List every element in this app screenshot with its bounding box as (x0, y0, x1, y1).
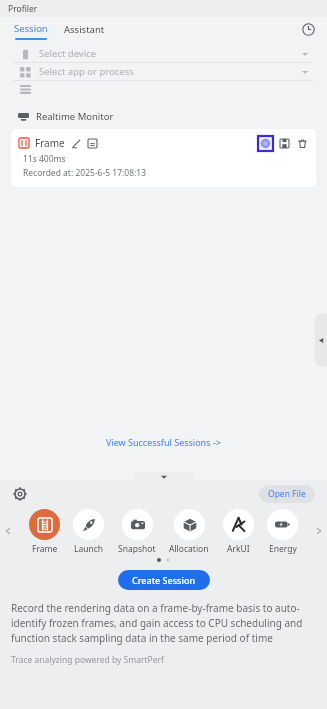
button[interactable]: Settings (12, 486, 28, 502)
button[interactable]: Assistant (62, 23, 107, 40)
staticText: Launch (74, 543, 104, 555)
button[interactable]: Rename (70, 137, 83, 150)
staticText: Realtime Monitor (36, 110, 114, 123)
button[interactable]: Create Session (118, 570, 210, 590)
staticText: View Successful Sessions -> (106, 436, 221, 448)
button[interactable]: Energy (266, 509, 299, 555)
button[interactable]: Open File (259, 485, 315, 503)
button[interactable]: Collapse panel (134, 472, 194, 481)
staticText: Trace analyzing powered by SmartPerf (11, 654, 164, 666)
staticText: 11s 400ms (23, 153, 66, 165)
button[interactable]: Select device (13, 45, 314, 62)
button[interactable]: Next (311, 509, 327, 553)
button[interactable]: ArkUI (222, 509, 255, 555)
staticText: Assistant (64, 23, 105, 36)
button[interactable] (13, 81, 314, 98)
button[interactable]: Launch (72, 509, 105, 555)
button[interactable]: Session (12, 22, 50, 40)
button[interactable]: Notes (86, 137, 99, 150)
staticText: Session (14, 22, 48, 35)
staticText: ArkUI (227, 543, 250, 555)
button[interactable]: View Successful Sessions -> (102, 432, 225, 452)
button[interactable]: Previous (0, 509, 16, 553)
staticText: Select device (39, 47, 97, 60)
button[interactable]: Frame (28, 509, 61, 555)
button[interactable]: History (299, 20, 317, 38)
staticText: Allocation (169, 543, 209, 555)
button[interactable]: Frame (11, 129, 316, 187)
button[interactable]: Expand panel (315, 314, 327, 366)
button[interactable]: Save (278, 137, 291, 150)
staticText: Create Session (132, 574, 196, 586)
button[interactable]: Snapshot (117, 509, 157, 555)
staticText: Frame (35, 136, 65, 150)
button[interactable]: Select app or process (13, 63, 314, 80)
staticText: Frame (32, 543, 58, 555)
staticText: Open File (268, 488, 306, 500)
staticText: Recorded at: 2025-6-5 17:08:13 (23, 167, 147, 179)
button[interactable]: Analyze (258, 136, 273, 151)
staticText: Snapshot (118, 543, 156, 555)
button[interactable]: Delete (296, 137, 309, 150)
staticText: Record the rendering data on a frame-by-… (11, 601, 316, 645)
button[interactable]: Allocation (168, 509, 210, 555)
staticText: Select app or process (39, 65, 134, 78)
staticText: Energy (269, 543, 297, 555)
staticText: Profiler (8, 3, 38, 15)
